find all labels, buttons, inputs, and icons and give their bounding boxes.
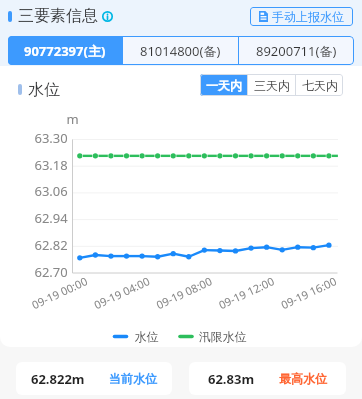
staticText: 当前水位: [109, 371, 157, 386]
button[interactable]: 62.822m: [16, 362, 172, 395]
staticText: 最高水位: [279, 371, 327, 386]
button[interactable]: 七天内: [296, 74, 343, 96]
staticText: 三天内: [254, 78, 290, 93]
button[interactable]: 62.83m: [189, 362, 346, 395]
button[interactable]: 90772397(主): [8, 36, 122, 65]
staticText: 三要素信息: [18, 6, 98, 26]
staticText: 七天内: [302, 78, 338, 93]
staticText: 62.83m: [208, 370, 255, 388]
staticText: 62.822m: [31, 370, 85, 388]
button[interactable]: 81014800(备): [123, 36, 238, 65]
button[interactable]: 三天内: [248, 74, 295, 96]
other: Info: [102, 11, 113, 22]
staticText: 90772397(主): [24, 42, 106, 60]
button[interactable]: 一天内: [200, 74, 247, 96]
button[interactable]: 89200711(备): [239, 36, 354, 65]
staticText: 手动上报水位: [272, 9, 344, 24]
button[interactable]: 手动上报水位: [250, 7, 353, 26]
staticText: 89200711(备): [256, 42, 337, 60]
staticText: 81014800(备): [140, 42, 221, 60]
staticText: 水位: [28, 80, 60, 100]
staticText: 一天内: [206, 78, 242, 93]
